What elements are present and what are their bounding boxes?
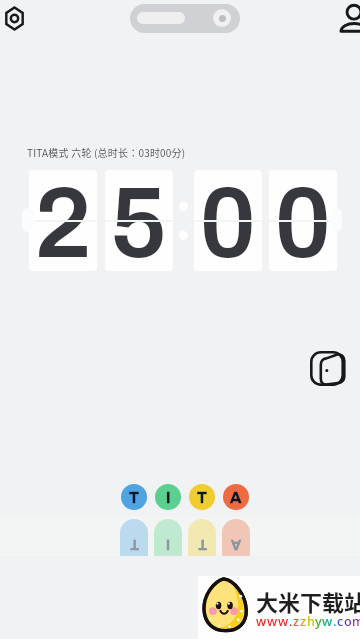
button[interactable]: Profile [337, 2, 360, 36]
staticText: w [256, 613, 267, 630]
button[interactable]: T [189, 484, 215, 510]
staticText: z [293, 613, 300, 630]
staticText: m [352, 613, 360, 630]
staticText: I [166, 537, 170, 552]
staticText: o [344, 613, 352, 630]
staticText: 大米下载站 [256, 585, 360, 617]
staticText: I [166, 489, 171, 506]
button[interactable]: Settings [0, 4, 28, 32]
staticText: 0 [274, 170, 332, 270]
staticText: w [322, 613, 333, 630]
staticText: T [130, 537, 139, 552]
staticText: A [231, 537, 241, 552]
staticText: w [278, 613, 289, 630]
staticText: h [307, 613, 315, 630]
staticText: y [315, 613, 322, 630]
staticText: . [289, 613, 293, 630]
staticText: TITA模式 六轮 (总时长：03时00分) [27, 145, 186, 159]
button[interactable]: Exit room [310, 351, 346, 387]
staticText: 5 [110, 170, 168, 270]
staticText: 2 [34, 170, 92, 270]
staticText: T [197, 489, 207, 506]
staticText: c [337, 613, 344, 630]
staticText: T [198, 537, 207, 552]
button[interactable]: A [223, 484, 249, 510]
staticText: . [333, 613, 337, 630]
staticText: A [230, 489, 242, 506]
staticText: z [300, 613, 307, 630]
button[interactable]: I [155, 484, 181, 510]
staticText: w [267, 613, 278, 630]
staticText: 0 [199, 170, 257, 270]
staticText: T [129, 489, 139, 506]
button[interactable]: T [121, 484, 147, 510]
